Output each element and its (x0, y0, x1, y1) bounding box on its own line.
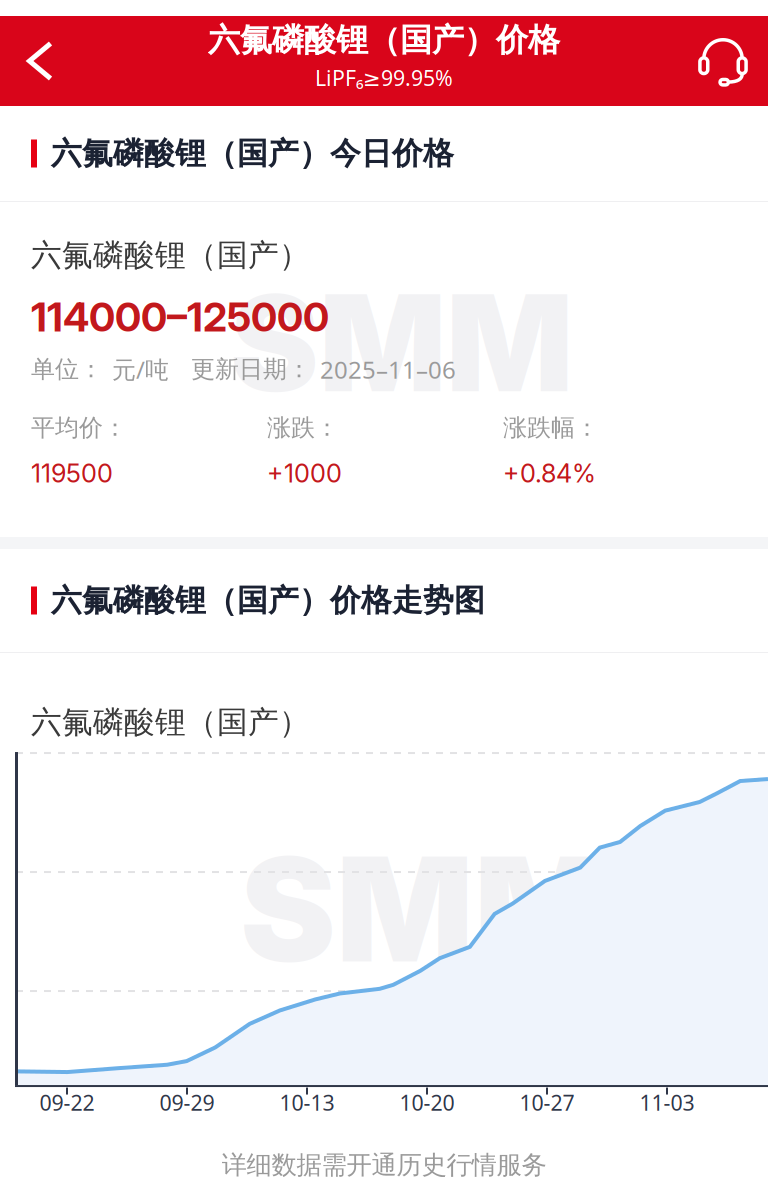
staticText: 涨跌幅： (503, 413, 599, 443)
button[interactable]: 返回 (0, 16, 80, 106)
staticText: 114000–125000 (31, 293, 329, 341)
staticText: LiPF₆≥99.95% (315, 63, 453, 92)
button[interactable]: 客服 (678, 16, 768, 106)
staticText: 六氟磷酸锂（国产）今日价格 (51, 134, 454, 173)
staticText: 六氟磷酸锂（国产）价格走势图 (51, 581, 485, 620)
staticText: 10-13 (279, 1088, 334, 1117)
staticText: 09-22 (39, 1088, 94, 1117)
staticText: +0.84% (503, 458, 596, 489)
staticText: 元/吨 (112, 353, 169, 386)
staticText: 平均价： (31, 413, 127, 443)
staticText: 六氟磷酸锂（国产） (31, 236, 310, 275)
staticText: 详细数据需开通历史行情服务 (221, 1149, 546, 1181)
staticText: +1000 (267, 458, 342, 489)
staticText: 六氟磷酸锂（国产）价格 (208, 20, 560, 60)
staticText: 六氟磷酸锂（国产） (31, 703, 310, 742)
staticText: 涨跌： (267, 413, 339, 443)
staticText: 09-29 (159, 1088, 214, 1117)
staticText: 119500 (31, 458, 113, 489)
staticText: 单位： (31, 354, 103, 384)
staticText: SMM (230, 262, 573, 423)
staticText: SMM (240, 822, 612, 996)
staticText: 10-27 (519, 1088, 574, 1117)
staticText: 更新日期： (191, 354, 311, 384)
staticText: 11-03 (639, 1088, 694, 1117)
staticText: 2025–11–06 (320, 353, 456, 386)
staticText: 10-20 (399, 1088, 454, 1117)
